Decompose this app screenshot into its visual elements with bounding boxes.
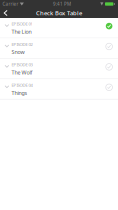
staticText: The Lion — [11, 28, 31, 35]
staticText: Things — [11, 89, 27, 96]
staticText: EPISODE 03 — [11, 62, 32, 68]
staticText: The Wolf — [11, 69, 32, 76]
staticText: Carrier — [2, 1, 18, 7]
staticText: Check Box Table — [36, 9, 82, 17]
button[interactable]: Back — [0, 8, 13, 18]
button[interactable]: EPISODE 04 — [0, 79, 118, 100]
staticText: 9:41 PM — [53, 1, 71, 7]
staticText: EPISODE 01 — [11, 21, 32, 27]
staticText: EPISODE 02 — [11, 41, 32, 47]
staticText: Snow — [11, 48, 24, 56]
staticText: EPISODE 04 — [11, 82, 32, 88]
button[interactable]: EPISODE 03 — [0, 59, 118, 79]
button[interactable]: EPISODE 02 — [0, 38, 118, 59]
button[interactable]: EPISODE 01 — [0, 18, 118, 38]
